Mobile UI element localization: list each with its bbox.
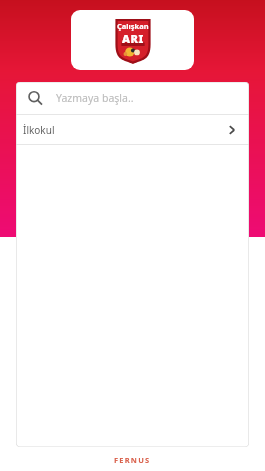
staticText: Yazmaya başla.. xyxy=(56,91,134,105)
staticText: İlkokul xyxy=(23,123,55,137)
staticText: Çalışkan xyxy=(117,21,149,31)
button[interactable]: Search xyxy=(16,82,249,114)
button[interactable]: Çalışkan Arı logo xyxy=(71,10,194,70)
staticText: ARI xyxy=(122,31,144,46)
staticText: FERNUS xyxy=(114,455,151,465)
other: Open İlkokul xyxy=(225,123,239,137)
button[interactable]: İlkokul xyxy=(16,115,249,144)
other: Search xyxy=(28,91,43,106)
